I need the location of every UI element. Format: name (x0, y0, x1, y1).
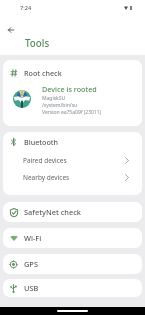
staticText: USB (24, 283, 39, 293)
staticText: Nearby devices (23, 173, 70, 182)
staticText: Device is rooted (42, 84, 97, 94)
button[interactable]: Wi-Fi (3, 228, 142, 248)
staticText: 7:24 (20, 4, 32, 12)
button[interactable]: Nearby devices (3, 169, 142, 186)
staticText: GPS (24, 259, 38, 269)
staticText: Root check (24, 68, 62, 78)
staticText: MagiskSU (42, 95, 66, 102)
button[interactable]: Paired devices (3, 152, 142, 169)
button[interactable]: GPS (3, 254, 142, 274)
button[interactable]: SafetyNet check (3, 202, 142, 222)
button[interactable]: Device is rooted (3, 82, 142, 126)
staticText: Paired devices (23, 156, 67, 165)
button[interactable]: Back (2, 21, 19, 38)
staticText: SafetyNet check (24, 207, 81, 217)
staticText: Tools (25, 37, 50, 50)
staticText: Bluetooth (24, 137, 59, 147)
staticText: /system/bin/su (42, 102, 78, 109)
staticText: Version ea75a09f (23011) (42, 109, 102, 116)
staticText: Wi-Fi (24, 233, 42, 243)
button[interactable]: USB (3, 279, 142, 297)
